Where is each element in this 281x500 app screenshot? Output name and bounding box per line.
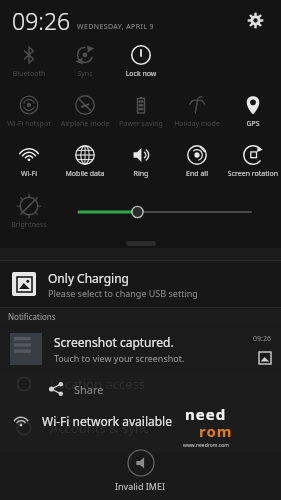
staticText: Only Charging	[48, 270, 129, 286]
staticText: Bluetooth	[1, 69, 57, 79]
button[interactable]: Settings	[241, 6, 269, 34]
staticText: Power saving	[113, 119, 169, 129]
staticText: WEDNESDAY, APRIL 9	[77, 22, 154, 32]
button[interactable]: Screen rotation	[225, 144, 281, 179]
staticText: Airplane mode	[57, 119, 113, 129]
staticText: GPS	[225, 119, 281, 129]
staticText: Lock now	[113, 69, 169, 79]
staticText: Sync	[57, 69, 113, 79]
button[interactable]: Mobile data	[57, 144, 113, 179]
staticText: Please select to change USB setting	[48, 287, 198, 299]
button[interactable]: End all	[169, 144, 225, 179]
staticText: Ring	[113, 169, 169, 179]
staticText: Screen rotation	[225, 169, 281, 179]
staticText: Wi-Fi network available	[42, 413, 172, 429]
staticText: www.needrom.com	[183, 442, 229, 449]
button[interactable]: Wi-Fi network available	[0, 404, 281, 438]
button[interactable]: Expand panel	[126, 241, 156, 246]
staticText: Mobile data	[57, 169, 113, 179]
staticText: Holiday mode	[169, 119, 225, 129]
staticText: Security settings	[50, 331, 151, 349]
staticText: Share	[74, 382, 104, 397]
staticText: Location access	[50, 375, 146, 393]
staticText: Brightness	[1, 220, 57, 230]
button[interactable]: Lock now	[113, 44, 169, 79]
button[interactable]: Holiday mode	[169, 94, 225, 129]
button[interactable]: Wi-Fi	[1, 144, 57, 179]
button[interactable]: Ring	[113, 144, 169, 179]
staticText: Invalid IMEI	[115, 480, 166, 492]
button[interactable]: Power saving	[113, 94, 169, 129]
staticText: Notifications	[8, 311, 56, 322]
button[interactable]: Sync	[57, 44, 113, 79]
staticText: Backup & reset	[50, 463, 142, 481]
button[interactable]: Airplane mode	[57, 94, 113, 129]
staticText: Wi-Fi	[1, 169, 57, 179]
staticText: rom	[199, 421, 233, 441]
staticText: Accounts & sync	[50, 419, 150, 437]
button[interactable]: Screenshot captured.	[0, 324, 281, 374]
staticText: End all	[169, 169, 225, 179]
staticText: need	[185, 404, 227, 424]
staticText: Touch to view your screenshot.	[54, 352, 185, 364]
staticText: Screenshot captured.	[54, 334, 174, 350]
button[interactable]: Share	[0, 374, 281, 404]
staticText: 09:26	[253, 334, 271, 344]
staticText: 09:26	[12, 5, 71, 36]
button[interactable]: GPS	[225, 94, 281, 129]
staticText: Wi-Fi hotspot	[1, 119, 57, 129]
button[interactable]: Brightness	[1, 195, 57, 230]
button[interactable]: Wi-Fi hotspot	[1, 94, 57, 129]
button[interactable]: Only Charging	[0, 261, 281, 307]
button[interactable]: Bluetooth	[1, 44, 57, 79]
button[interactable]	[79, 200, 251, 224]
